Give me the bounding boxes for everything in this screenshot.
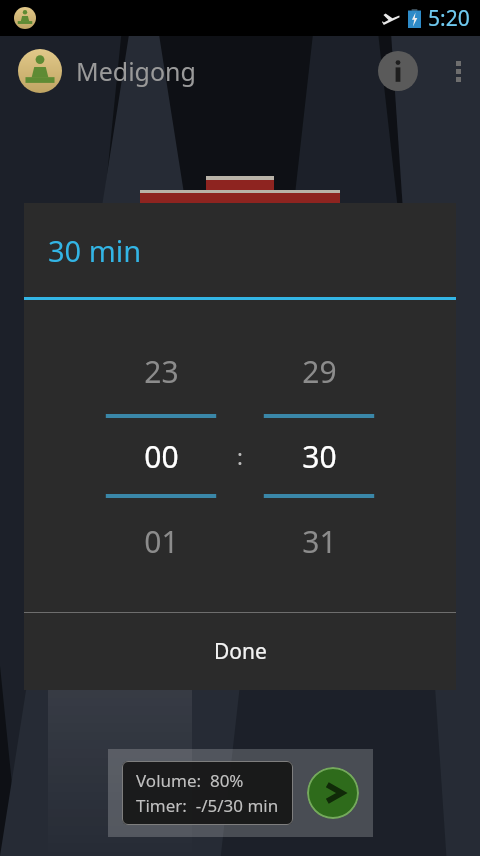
button[interactable]: 01 [101,501,221,581]
staticText: 5:20 [428,4,470,33]
staticText: 23 [144,351,179,392]
staticText: 30 [302,436,337,477]
button[interactable]: Play [307,767,359,819]
button[interactable]: Volume: 80% [122,761,293,825]
button[interactable]: 23 [101,331,221,411]
button[interactable]: More options [436,49,480,93]
button[interactable]: 31 [259,501,379,581]
staticText: Timer: -/5/30 min [136,794,279,817]
button[interactable]: 00 [101,421,221,491]
button[interactable]: 29 [259,331,379,411]
staticText: : [237,441,243,471]
button[interactable]: Info [374,47,422,95]
staticText: Done [214,637,267,666]
other: Airplane mode [382,10,400,28]
staticText: 01 [144,521,179,562]
staticText: Volume: 80% [136,769,244,792]
staticText: 31 [302,521,337,562]
button[interactable]: 30 [259,421,379,491]
staticText: Medigong [76,54,196,88]
other: Battery charging [408,9,421,28]
staticText: 30 min [48,231,142,270]
staticText: 00 [144,436,179,477]
staticText: 29 [302,351,337,392]
button[interactable]: Done [24,613,456,690]
